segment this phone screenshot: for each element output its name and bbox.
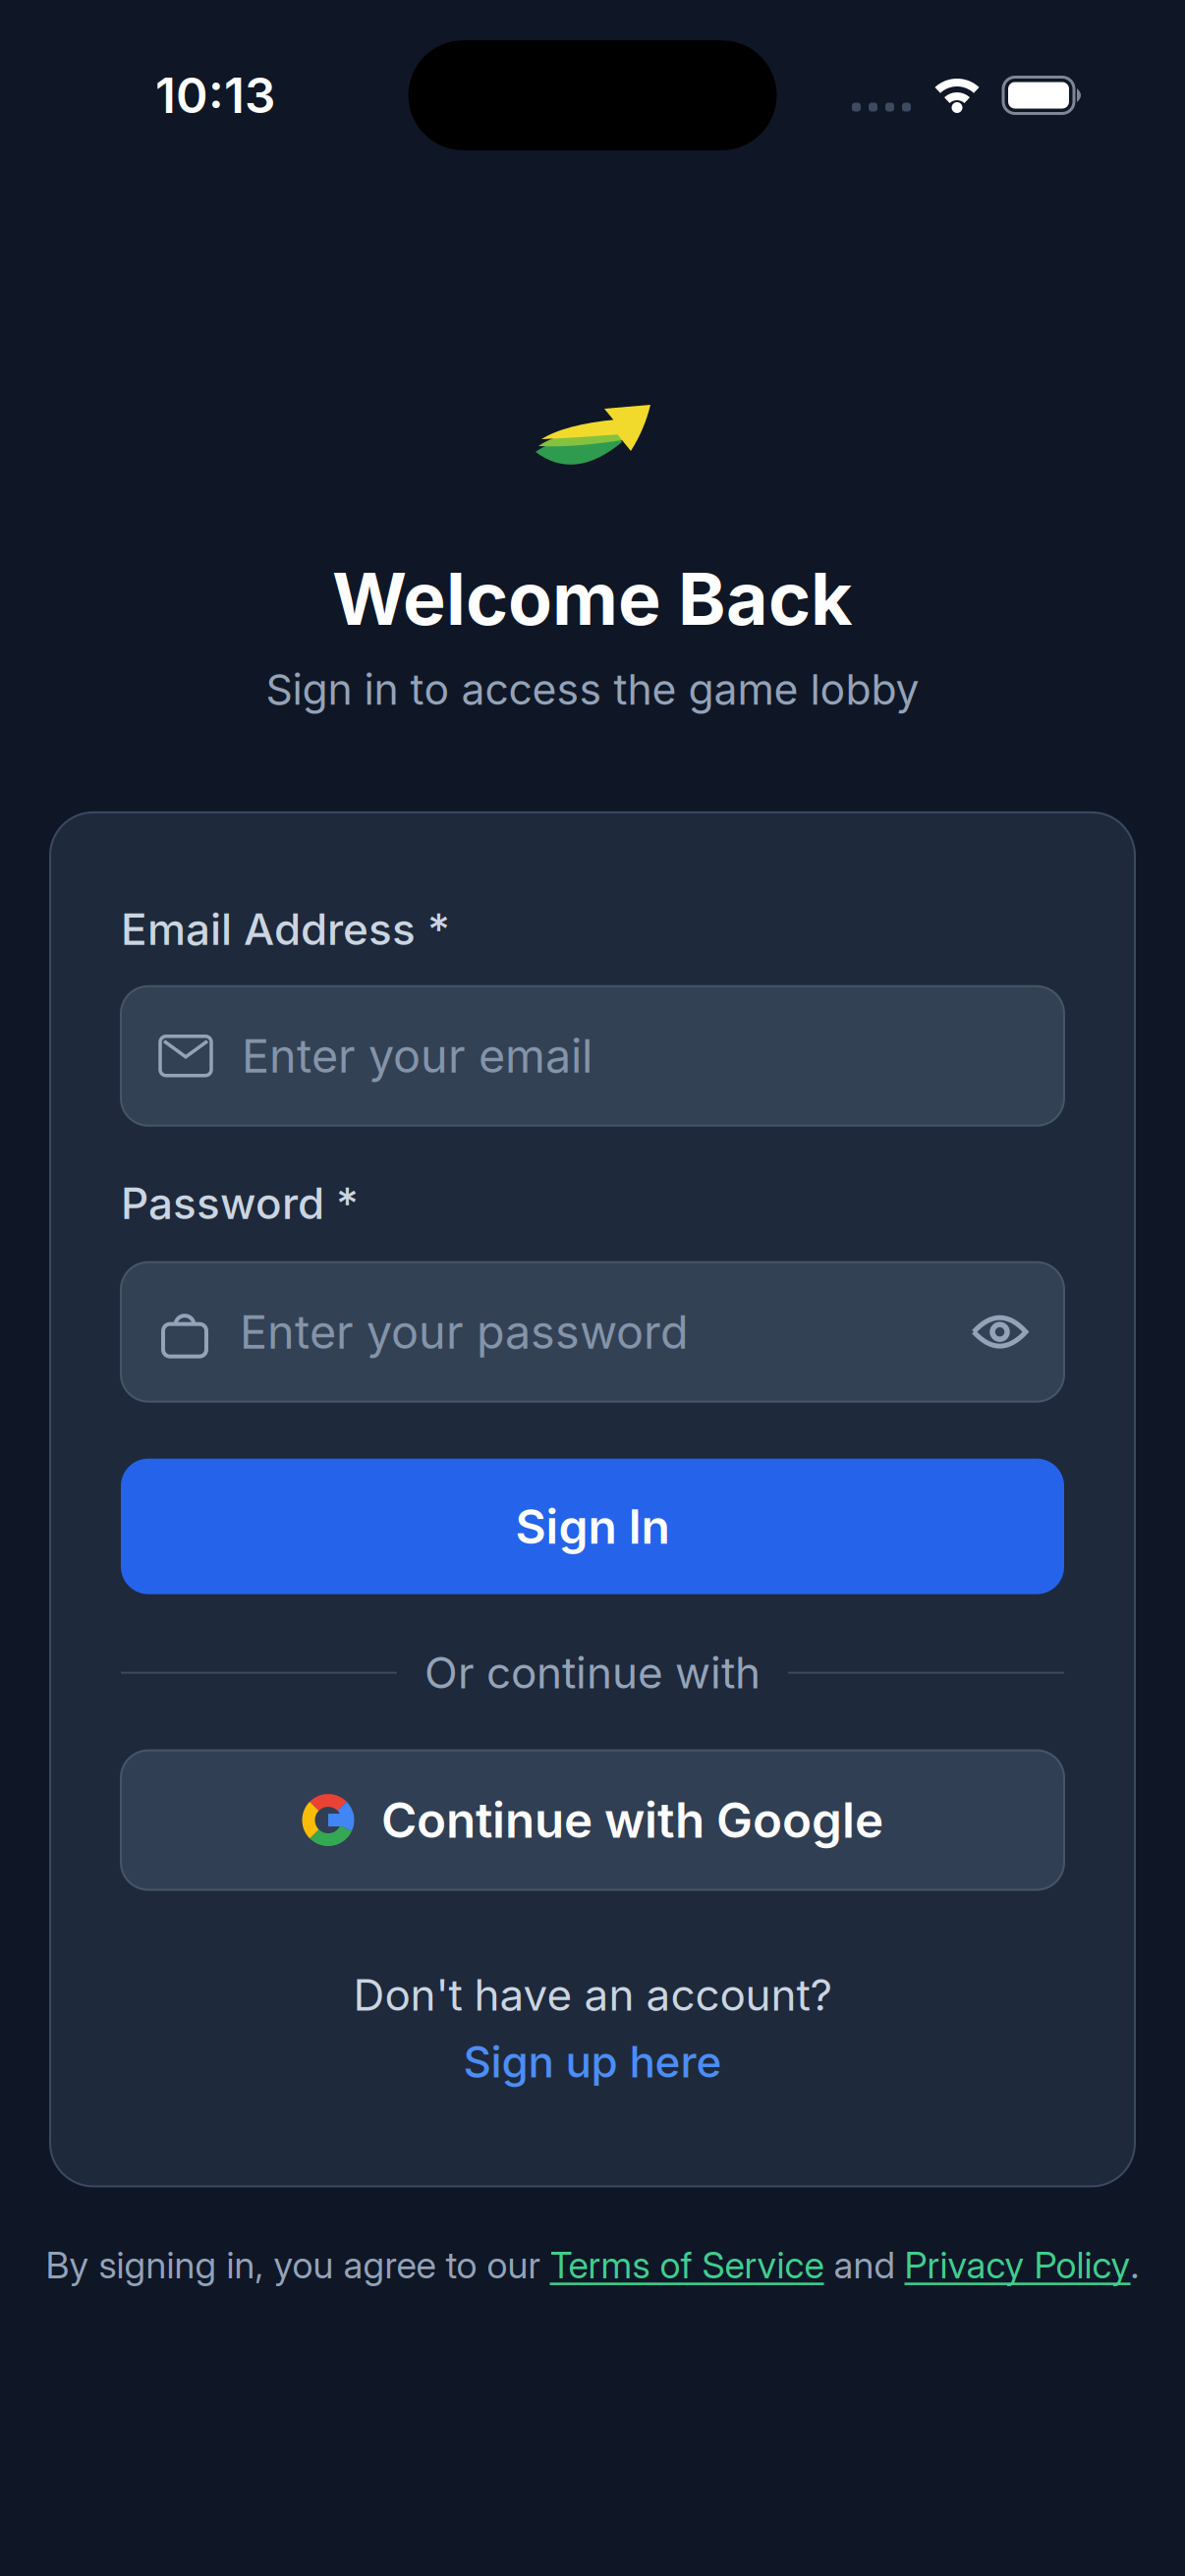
button[interactable]: Show password [972, 1312, 1028, 1352]
staticText: Sign in to access the game lobby [266, 665, 919, 714]
button[interactable]: Privacy Policy [904, 2243, 1130, 2287]
button[interactable]: Terms of Service [550, 2243, 824, 2287]
staticText: Privacy Policy [904, 2243, 1130, 2287]
button[interactable]: Sign up here [463, 2036, 722, 2087]
staticText: Sign In [515, 1499, 670, 1554]
button[interactable]: Sign In [121, 1459, 1064, 1594]
staticText: Continue with Google [381, 1792, 883, 1849]
staticText: . [1130, 2243, 1139, 2287]
staticText: Email Address * [121, 904, 450, 955]
button[interactable]: Continue with Google [121, 1750, 1064, 1890]
staticText: By signing in, you agree to our [46, 2243, 550, 2287]
staticText: Password * [121, 1178, 359, 1229]
staticText: Or continue with [424, 1647, 761, 1698]
staticText: Terms of Service [550, 2243, 824, 2287]
staticText: Enter your password [240, 1305, 689, 1359]
staticText: Don't have an account? [353, 1969, 832, 2020]
staticText: and [824, 2243, 904, 2287]
staticText: Enter your email [242, 1029, 592, 1083]
staticText: Sign up here [463, 2036, 722, 2087]
staticText: Welcome Back [332, 556, 853, 641]
staticText: 10:13 [155, 67, 275, 124]
